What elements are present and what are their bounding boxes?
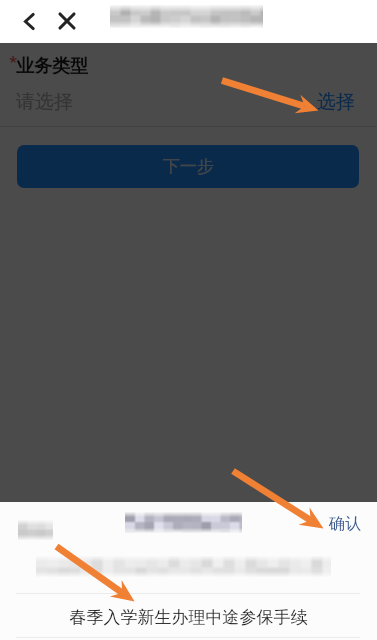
button[interactable]: Close: [47, 1, 87, 41]
button[interactable]: 确认: [313, 504, 377, 544]
button[interactable]: Cancel: [0, 502, 74, 542]
staticText: 选择: [317, 90, 355, 114]
staticText: 业务类型: [16, 55, 88, 78]
staticText: 下一步: [163, 156, 214, 177]
staticText: 确认: [329, 514, 361, 534]
staticText: *: [9, 51, 18, 71]
staticText: 请选择: [16, 90, 73, 114]
button[interactable]: 请选择: [0, 82, 377, 122]
button[interactable]: 下一步: [17, 145, 359, 188]
staticText: 春季入学新生办理中途参保手续: [0, 607, 377, 628]
button[interactable]: Back: [9, 1, 49, 41]
